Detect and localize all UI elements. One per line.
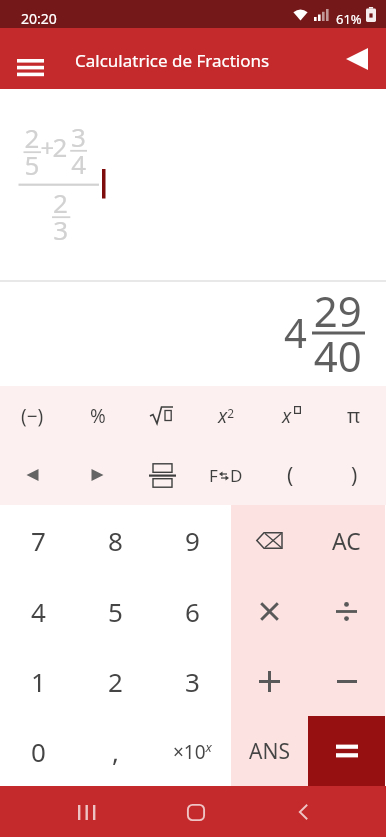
button[interactable]: 5 <box>77 576 154 646</box>
button[interactable] <box>130 445 194 505</box>
button[interactable] <box>65 445 130 505</box>
staticText: ) <box>351 461 358 490</box>
staticText: 61% <box>336 10 362 28</box>
staticText: 7 <box>31 523 46 558</box>
button[interactable] <box>231 646 308 716</box>
button[interactable] <box>308 646 385 716</box>
button[interactable]: 1 <box>0 646 77 716</box>
button[interactable] <box>308 716 385 786</box>
staticText: x2 <box>218 403 235 429</box>
staticText: 1 <box>31 664 46 699</box>
staticText: AC <box>332 525 361 556</box>
button[interactable]: 2 <box>77 646 154 716</box>
button[interactable] <box>6 47 54 87</box>
staticText: 20:20 <box>21 9 57 28</box>
staticText: x <box>282 403 292 429</box>
staticText: 5 <box>108 594 123 629</box>
staticText: 0 <box>31 734 46 769</box>
button[interactable] <box>308 576 385 646</box>
button[interactable]: 6 <box>154 576 231 646</box>
staticText: F <box>209 464 218 487</box>
staticText: (−) <box>21 403 44 429</box>
button[interactable] <box>231 576 308 646</box>
staticText: 6 <box>185 594 200 629</box>
button[interactable] <box>0 445 65 505</box>
button[interactable]: 4 <box>0 576 77 646</box>
button[interactable]: 3 <box>154 646 231 716</box>
button[interactable]: % <box>65 386 130 445</box>
button[interactable]: ( <box>258 445 322 505</box>
button[interactable] <box>231 505 308 576</box>
button[interactable]: 7 <box>0 505 77 576</box>
button[interactable]: π <box>322 386 386 445</box>
button[interactable]: 9 <box>154 505 231 576</box>
staticText: D <box>230 464 243 487</box>
staticText: ( <box>287 461 294 490</box>
button[interactable]: 8 <box>77 505 154 576</box>
button[interactable] <box>63 788 111 836</box>
button[interactable]: F <box>194 445 258 505</box>
button[interactable] <box>334 42 380 82</box>
button[interactable] <box>172 788 220 836</box>
staticText: 3 <box>185 664 200 699</box>
button[interactable]: AC <box>308 505 385 576</box>
button[interactable]: ) <box>322 445 386 505</box>
button[interactable] <box>130 386 194 445</box>
staticText: 2 <box>108 664 123 699</box>
staticText: Calculatrice de Fractions <box>75 49 270 72</box>
staticText: % <box>90 403 106 429</box>
staticText: π <box>347 402 361 429</box>
staticText: 8 <box>108 523 123 558</box>
staticText: ANS <box>249 737 290 766</box>
staticText: 9 <box>185 523 200 558</box>
button[interactable]: x <box>258 386 322 445</box>
staticText: 4 <box>31 594 46 629</box>
button[interactable]: ANS <box>231 716 308 786</box>
button[interactable]: 0 <box>0 716 77 786</box>
button[interactable] <box>279 788 327 836</box>
button[interactable]: (−) <box>0 386 65 445</box>
button[interactable]: , <box>77 716 154 786</box>
staticText: , <box>112 734 119 769</box>
button[interactable]: x2 <box>194 386 258 445</box>
button[interactable]: ×10x <box>154 716 231 786</box>
staticText: ×10x <box>173 738 212 764</box>
